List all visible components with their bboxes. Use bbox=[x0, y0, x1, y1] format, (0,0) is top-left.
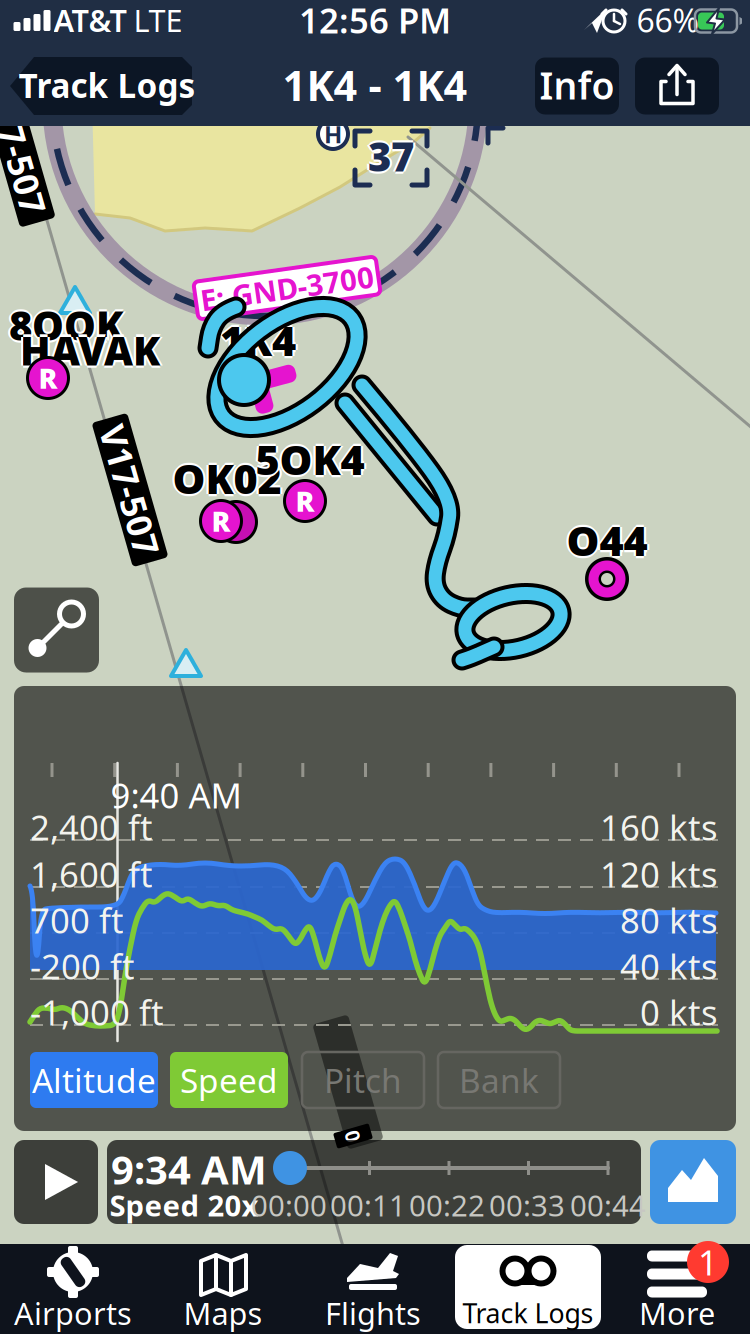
staticText: Pitch bbox=[324, 1058, 402, 1102]
staticText: AT&T bbox=[53, 0, 126, 40]
staticText: 1 bbox=[698, 1239, 718, 1285]
staticText: O44 bbox=[566, 513, 647, 567]
staticText: 8OOK bbox=[9, 301, 123, 354]
staticText: HAVAK bbox=[22, 323, 162, 376]
staticText: 37 bbox=[368, 127, 414, 180]
button[interactable]: Pitch bbox=[302, 1052, 424, 1108]
staticText: 66% bbox=[636, 0, 699, 41]
button[interactable]: Speed bbox=[170, 1052, 288, 1108]
staticText: 0 bbox=[347, 1123, 358, 1149]
staticText: 37 bbox=[370, 129, 416, 182]
staticText: Speed bbox=[180, 1058, 278, 1102]
staticText: 8OOK bbox=[9, 298, 123, 351]
staticText: 700 ft bbox=[30, 897, 124, 943]
staticText: -200 ft bbox=[30, 943, 135, 989]
staticText: 00:33 bbox=[489, 1185, 565, 1224]
button[interactable]: Play bbox=[14, 1140, 98, 1224]
staticText: 40 kts bbox=[620, 943, 718, 989]
staticText: 00:11 bbox=[330, 1185, 406, 1224]
staticText: 5OK4 bbox=[258, 432, 367, 486]
staticText: Maps bbox=[183, 1293, 262, 1333]
staticText: O44 bbox=[569, 513, 650, 567]
staticText: 00:22 bbox=[409, 1185, 485, 1224]
staticText: 37 bbox=[368, 129, 414, 182]
staticText: HAVAK bbox=[20, 326, 160, 379]
staticText: OK02 bbox=[172, 451, 281, 505]
button[interactable]: Playback position bbox=[273, 1151, 307, 1185]
staticText: H bbox=[324, 118, 342, 150]
staticText: 9:34 AM bbox=[111, 1142, 267, 1195]
staticText: R bbox=[38, 359, 57, 397]
staticText: 17-507 bbox=[0, 137, 75, 183]
staticText: 8OOK bbox=[9, 296, 123, 349]
staticText: Track Logs bbox=[462, 1295, 593, 1331]
button[interactable]: 1 bbox=[604, 1244, 750, 1334]
staticText: 1K4 bbox=[222, 313, 298, 367]
staticText: 5OK4 bbox=[253, 432, 362, 486]
staticText: Flights bbox=[325, 1293, 421, 1333]
staticText: R bbox=[295, 482, 314, 520]
staticText: -1,000 ft bbox=[30, 989, 164, 1035]
staticText: 1,600 ft bbox=[30, 851, 153, 897]
staticText: Airports bbox=[14, 1293, 132, 1333]
staticText: 37 bbox=[368, 132, 414, 185]
staticText: 00:44 bbox=[570, 1185, 646, 1224]
staticText: HAVAK bbox=[20, 323, 160, 376]
staticText: 120 kts bbox=[600, 851, 718, 897]
staticText: Speed 20x bbox=[109, 1185, 258, 1224]
staticText: 2,400 ft bbox=[30, 804, 153, 850]
button[interactable]: Info bbox=[535, 57, 619, 114]
button[interactable]: Back bbox=[10, 57, 192, 115]
staticText: HAVAK bbox=[20, 321, 160, 374]
staticText: 1K4 bbox=[218, 313, 294, 367]
button[interactable]: Airports bbox=[0, 1244, 146, 1334]
staticText: 12:56 PM bbox=[299, 0, 451, 43]
staticText: 8OOK bbox=[11, 298, 125, 351]
staticText: V17-507 bbox=[63, 467, 197, 513]
staticText: 160 kts bbox=[600, 804, 718, 850]
staticText: 00:00 bbox=[251, 1185, 327, 1224]
staticText: 0 kts bbox=[640, 989, 718, 1035]
staticText: LTE bbox=[133, 0, 182, 40]
staticText: 5OK4 bbox=[255, 429, 364, 484]
staticText: 5OK4 bbox=[255, 434, 364, 489]
button[interactable]: Bank bbox=[438, 1052, 560, 1108]
button[interactable]: Show graph bbox=[650, 1140, 736, 1224]
staticText: 1K4 - 1K4 bbox=[282, 58, 467, 112]
staticText: OK02 bbox=[175, 451, 284, 505]
button[interactable]: Flights bbox=[300, 1244, 446, 1334]
staticText: Info bbox=[539, 60, 614, 110]
staticText: Track Logs bbox=[18, 63, 195, 107]
staticText: O44 bbox=[564, 513, 645, 567]
button[interactable]: Maps bbox=[150, 1244, 296, 1334]
staticText: 80 kts bbox=[620, 897, 718, 943]
button[interactable]: Share bbox=[635, 57, 719, 114]
staticText: R bbox=[211, 502, 230, 540]
staticText: 5OK4 bbox=[255, 432, 364, 486]
staticText: O44 bbox=[566, 510, 647, 565]
button[interactable]: Route bbox=[14, 587, 99, 672]
button[interactable]: Altitude bbox=[30, 1052, 158, 1108]
staticText: More bbox=[639, 1293, 715, 1333]
staticText: 1K4 bbox=[220, 313, 296, 367]
staticText: OK02 bbox=[172, 448, 281, 503]
staticText: 8OOK bbox=[7, 298, 121, 351]
staticText: Bank bbox=[459, 1058, 539, 1102]
staticText: 1K4 bbox=[220, 310, 296, 365]
staticText: OK02 bbox=[170, 451, 279, 505]
staticText: OK02 bbox=[172, 453, 281, 508]
staticText: O44 bbox=[566, 515, 647, 570]
staticText: 37 bbox=[366, 129, 412, 182]
button[interactable]: Track Logs bbox=[453, 1244, 603, 1334]
staticText: 9:40 AM bbox=[110, 772, 241, 818]
staticText: HAVAK bbox=[18, 323, 158, 376]
staticText: 1K4 bbox=[220, 315, 296, 370]
staticText: Altitude bbox=[32, 1058, 156, 1102]
staticText: E: GND-3700 bbox=[199, 268, 374, 307]
